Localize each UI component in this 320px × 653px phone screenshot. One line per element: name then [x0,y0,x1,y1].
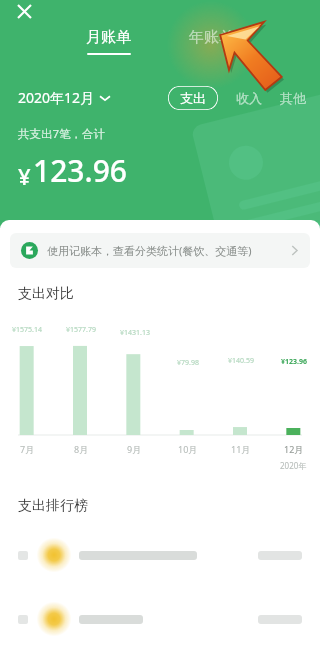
staticText: 其他 [280,90,306,106]
staticText: 收入 [236,90,262,106]
staticText: 7月 [20,443,35,455]
staticText: 2020年 [280,460,307,471]
staticText: ¥123.96 [281,357,307,367]
staticText: 8月 [74,443,89,455]
staticText: 使用记账本，查看分类统计(餐饮、交通等) [47,243,252,258]
staticText: ¥140.59 [228,356,254,366]
staticText: 123.96 [33,150,127,191]
staticText: 9月 [127,443,142,455]
button[interactable]: 月账单 [72,26,145,57]
button[interactable]: 其他 [280,86,306,110]
button[interactable]: 年账单 [175,26,248,49]
staticText: ¥1575.14 [12,325,42,335]
button[interactable] [0,531,320,579]
staticText: 11月 [231,443,251,455]
staticText: 支出对比 [18,285,74,303]
staticText: ¥1431.13 [120,328,150,338]
staticText: 共支出7笔，合计 [18,126,106,142]
button[interactable]: 2020年12月 [18,84,110,111]
staticText: 12月 [284,443,304,455]
button[interactable]: 使用记账本，查看分类统计(餐饮、交通等) [10,233,310,268]
staticText: 2020年12月 [18,88,95,107]
staticText: 年账单 [189,28,234,47]
staticText: ¥1577.79 [66,325,96,335]
staticText: 支出排行榜 [18,497,88,515]
staticText: 支出 [180,90,206,106]
staticText: ¥ [18,161,31,191]
button[interactable]: 收入 [236,86,262,110]
button[interactable]: 支出 [168,86,218,110]
staticText: ¥79.98 [177,358,199,368]
button[interactable]: Close [6,0,42,29]
button[interactable] [0,595,320,643]
staticText: 月账单 [86,28,131,47]
staticText: 10月 [178,443,198,455]
